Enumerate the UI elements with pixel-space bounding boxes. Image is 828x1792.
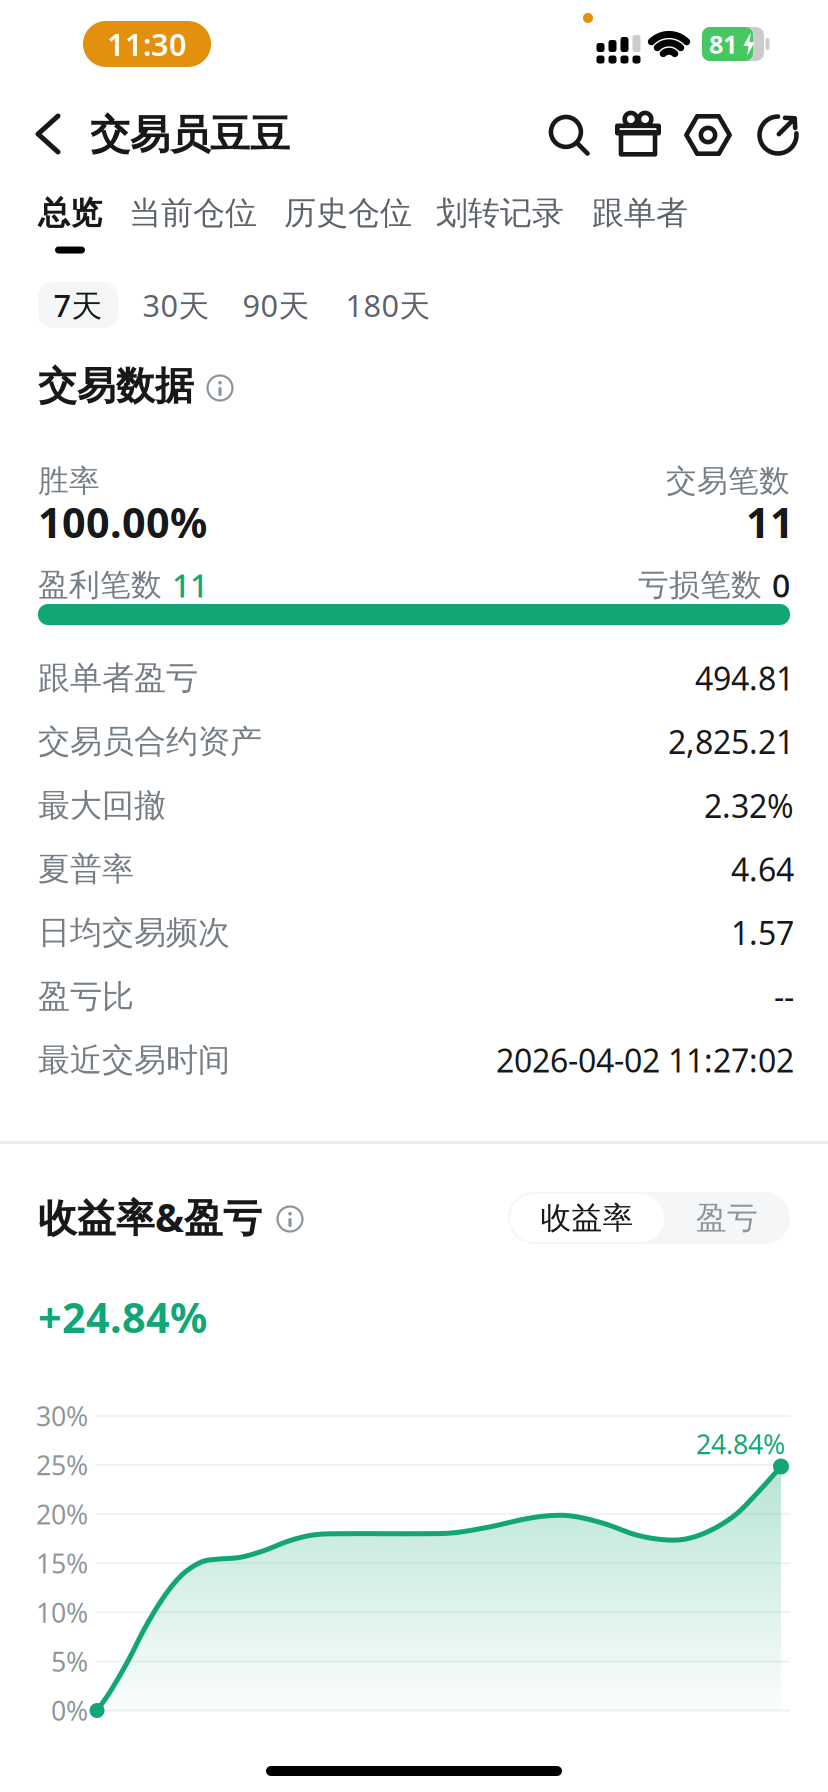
- button[interactable]: 30天: [142, 277, 209, 333]
- staticText: 最近交易时间: [38, 1040, 230, 1080]
- staticText: 1.57: [731, 911, 794, 954]
- staticText: 2026-04-02 11:27:02: [496, 1039, 794, 1081]
- staticText: 10%: [36, 1595, 88, 1630]
- staticText: 81: [709, 27, 737, 61]
- staticText: 5%: [51, 1644, 88, 1679]
- staticText: 亏损笔数: [638, 566, 762, 604]
- staticText: 盈利笔数: [38, 566, 162, 604]
- button[interactable]: 90天: [242, 277, 309, 333]
- staticText: 11: [746, 495, 794, 549]
- staticText: 交易员豆豆: [90, 110, 290, 159]
- staticText: 20%: [36, 1496, 88, 1532]
- staticText: 历史仓位: [284, 193, 412, 233]
- staticText: 25%: [36, 1447, 88, 1483]
- staticText: 7天: [53, 285, 102, 325]
- button[interactable]: 180天: [345, 277, 430, 333]
- staticText: 494.81: [695, 657, 794, 699]
- staticText: 24.84%: [696, 1426, 785, 1462]
- staticText: 100.00%: [38, 495, 207, 549]
- staticText: 0: [772, 564, 790, 606]
- staticText: +24.84%: [38, 1290, 207, 1344]
- button[interactable]: 总览: [34, 187, 106, 239]
- button[interactable]: 收益率: [510, 1194, 664, 1242]
- button[interactable]: 盈亏: [684, 1191, 770, 1245]
- staticText: 夏普率: [38, 849, 134, 889]
- button[interactable]: 7天: [38, 282, 118, 328]
- staticText: 15%: [36, 1545, 88, 1581]
- staticText: 0%: [51, 1693, 88, 1728]
- staticText: 盈亏: [696, 1199, 758, 1237]
- button[interactable]: Share: [756, 113, 800, 157]
- staticText: 2,825.21: [668, 720, 794, 763]
- button[interactable]: 当前仓位: [129, 187, 257, 239]
- staticText: 胜率: [38, 462, 100, 500]
- staticText: 跟单者盈亏: [38, 658, 198, 698]
- button[interactable]: 历史仓位: [284, 187, 412, 239]
- staticText: 最大回撤: [38, 786, 166, 825]
- staticText: 交易笔数: [666, 462, 790, 500]
- staticText: 收益率&盈亏: [38, 1191, 262, 1243]
- staticText: 跟单者: [592, 193, 688, 233]
- staticText: 4.64: [731, 848, 794, 890]
- staticText: --: [774, 975, 794, 1018]
- staticText: 划转记录: [436, 193, 564, 233]
- staticText: 收益率: [540, 1199, 633, 1237]
- button[interactable]: 划转记录: [436, 187, 564, 239]
- staticText: 30天: [142, 285, 209, 325]
- staticText: 盈亏比: [38, 977, 134, 1016]
- button[interactable]: About trading data: [207, 375, 232, 400]
- button[interactable]: Back: [26, 104, 70, 164]
- staticText: 交易员合约资产: [38, 722, 262, 761]
- staticText: 总览: [38, 193, 102, 233]
- staticText: 2.32%: [704, 784, 794, 827]
- button[interactable]: About returns: [277, 1206, 302, 1231]
- staticText: 交易数据: [38, 362, 194, 410]
- staticText: 90天: [242, 285, 309, 325]
- staticText: 11:30: [107, 24, 187, 64]
- staticText: 日均交易频次: [38, 913, 230, 952]
- button[interactable]: Rewards: [615, 112, 661, 158]
- button[interactable]: Return to call: [83, 21, 211, 67]
- button[interactable]: Settings: [685, 112, 731, 158]
- button[interactable]: 跟单者: [592, 187, 688, 239]
- staticText: 当前仓位: [129, 193, 257, 233]
- staticText: 30%: [36, 1398, 88, 1434]
- staticText: 180天: [345, 285, 430, 325]
- button[interactable]: Search: [547, 113, 591, 157]
- staticText: 11: [172, 564, 208, 606]
